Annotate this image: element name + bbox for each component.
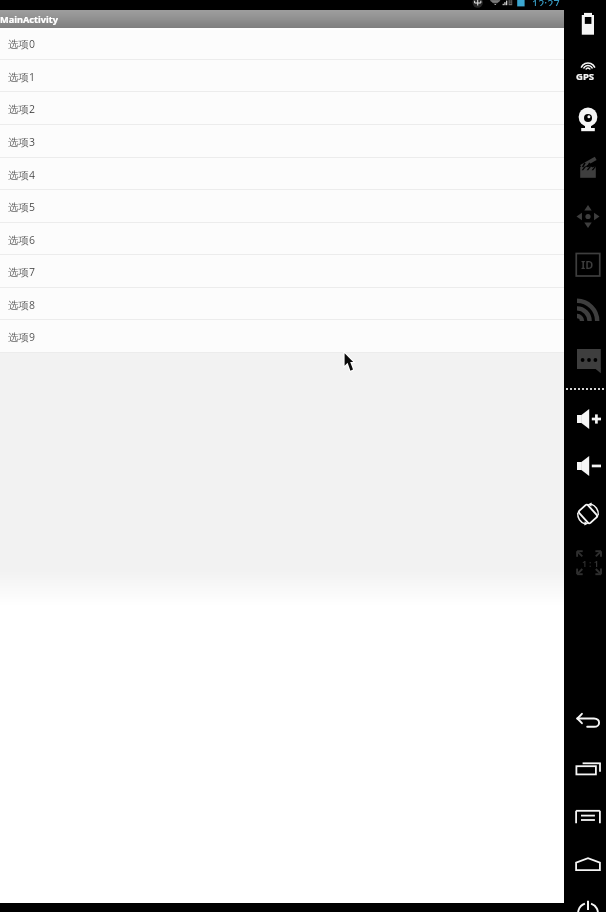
staticText: ID [581,257,594,272]
button[interactable]: 选项2 [0,92,564,125]
staticText: GPS [576,70,595,83]
button[interactable]: Rotate [567,498,603,530]
button[interactable]: Movie recording [567,150,603,182]
button[interactable]: Zoom 1:1 [567,540,603,572]
staticText: 选项0 [8,37,36,51]
button[interactable]: Power [567,889,603,912]
button[interactable]: Menu [567,798,603,830]
staticText: 选项7 [8,265,36,279]
button[interactable]: Cellular [567,294,603,326]
button[interactable]: Phone identity [567,248,603,280]
button[interactable]: Back [567,704,603,736]
button[interactable]: Battery [567,8,603,40]
button[interactable]: Volume up [567,403,603,435]
staticText: 选项9 [8,330,36,344]
button[interactable]: 选项7 [0,255,564,288]
button[interactable]: 选项1 [0,60,564,93]
staticText: 1 : 1 [582,558,599,570]
button[interactable]: 选项0 [0,27,564,60]
button[interactable]: Home [567,841,603,873]
staticText: 选项4 [8,168,36,182]
staticText: 选项5 [8,200,36,214]
button[interactable]: D-pad [567,200,603,232]
button[interactable]: 选项3 [0,125,564,158]
staticText: MainActivity [0,13,58,26]
button[interactable]: Webcam [567,101,603,133]
button[interactable]: 选项4 [0,158,564,191]
button[interactable]: Recent apps [567,750,603,782]
button[interactable]: 选项8 [0,288,564,321]
button[interactable]: Volume down [567,450,603,482]
staticText: 选项6 [8,233,36,247]
button[interactable]: Messages [567,342,603,374]
button[interactable]: 选项9 [0,320,564,353]
staticText: 12:27 [532,0,560,6]
button[interactable]: GPS [567,54,603,86]
button[interactable]: 选项6 [0,223,564,256]
staticText: 选项2 [8,102,36,116]
button[interactable]: 选项5 [0,190,564,223]
staticText: 选项3 [8,135,36,149]
staticText: 选项8 [8,298,36,312]
staticText: 选项1 [8,70,36,84]
